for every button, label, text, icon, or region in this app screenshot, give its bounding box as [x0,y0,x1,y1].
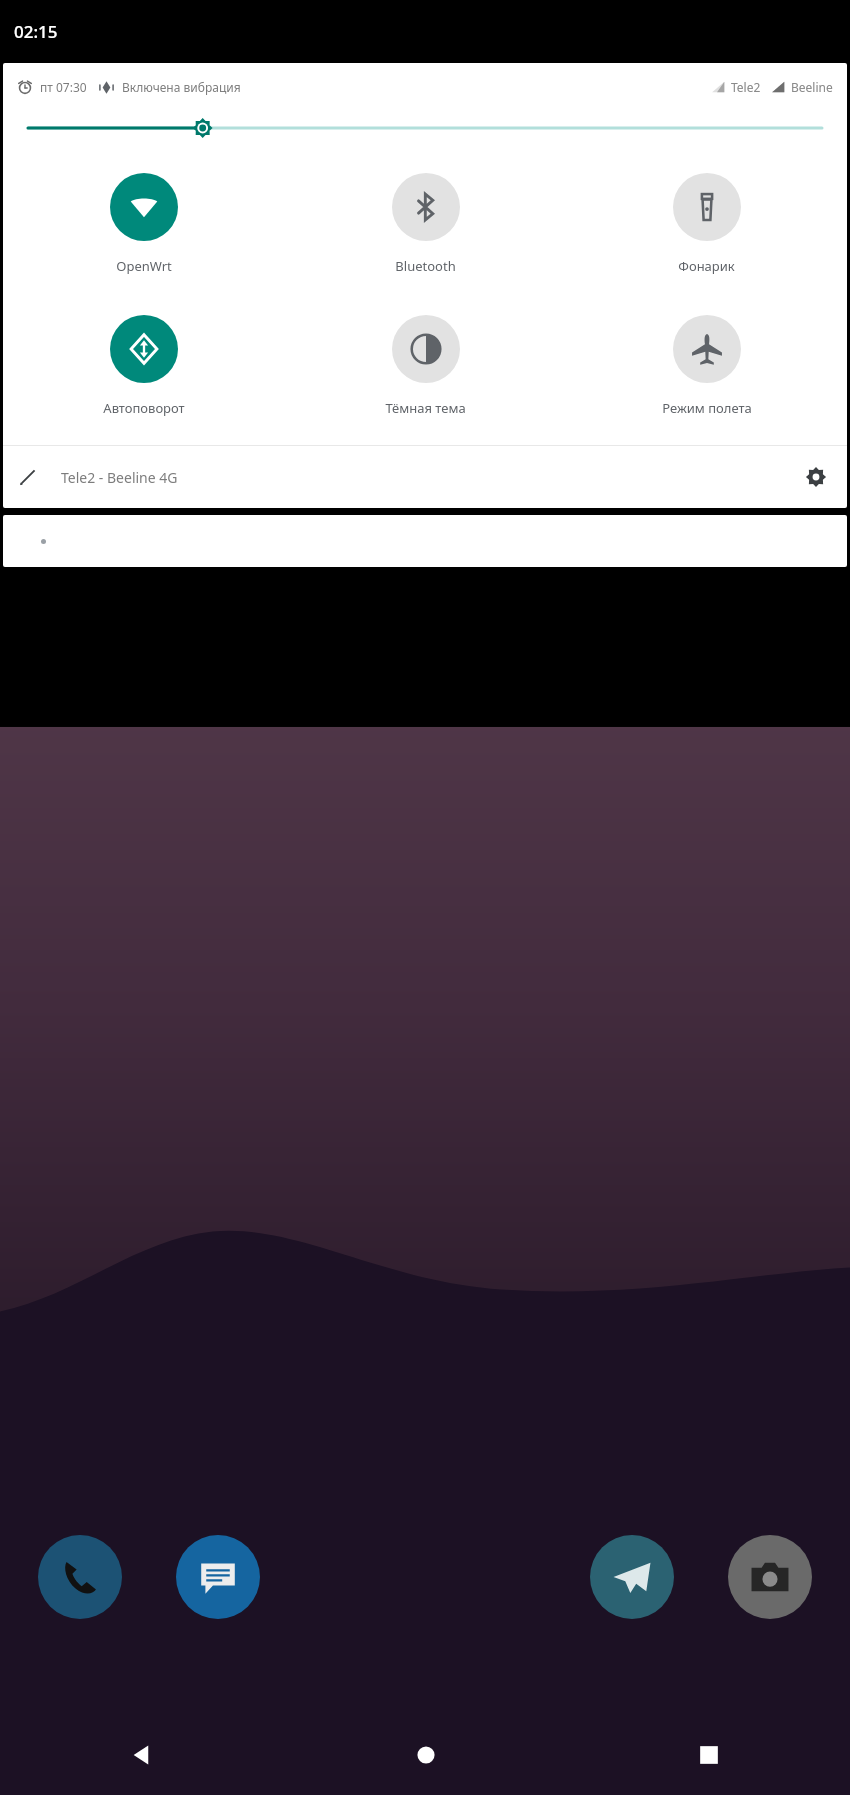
staticText: пт 07:30 [40,79,87,95]
button[interactable]: OpenWrt [3,173,285,275]
button[interactable]: Recents [567,1715,850,1795]
other: Edit [17,466,39,488]
staticText: Автоповорот [103,399,185,417]
button[interactable]: Telegram [590,1535,674,1619]
button[interactable]: Фонарик [566,173,847,275]
button[interactable]: Messages [176,1535,260,1619]
staticText: 02:15 [14,20,58,43]
button[interactable]: Home [284,1715,567,1795]
staticText: Tele2 - Beeline 4G [61,468,178,487]
staticText: Tele2 [731,79,761,95]
button[interactable]: Back [0,1715,284,1795]
staticText: Режим полета [662,399,752,417]
button[interactable]: Phone [38,1535,122,1619]
button[interactable]: Режим полета [566,315,847,417]
button[interactable]: Тёмная тема [285,315,566,417]
staticText: Beeline [791,79,833,95]
staticText: Bluetooth [395,257,456,275]
button[interactable]: Brightness [28,113,822,143]
staticText: Включена вибрация [122,79,241,95]
button[interactable]: Settings [799,460,833,494]
button[interactable]: Edit [3,458,190,496]
button[interactable]: Автоповорот [3,315,285,417]
staticText: OpenWrt [116,257,172,275]
staticText: Фонарик [678,257,735,275]
button[interactable]: Camera [728,1535,812,1619]
button[interactable]: Bluetooth [285,173,566,275]
staticText: Тёмная тема [385,399,466,417]
